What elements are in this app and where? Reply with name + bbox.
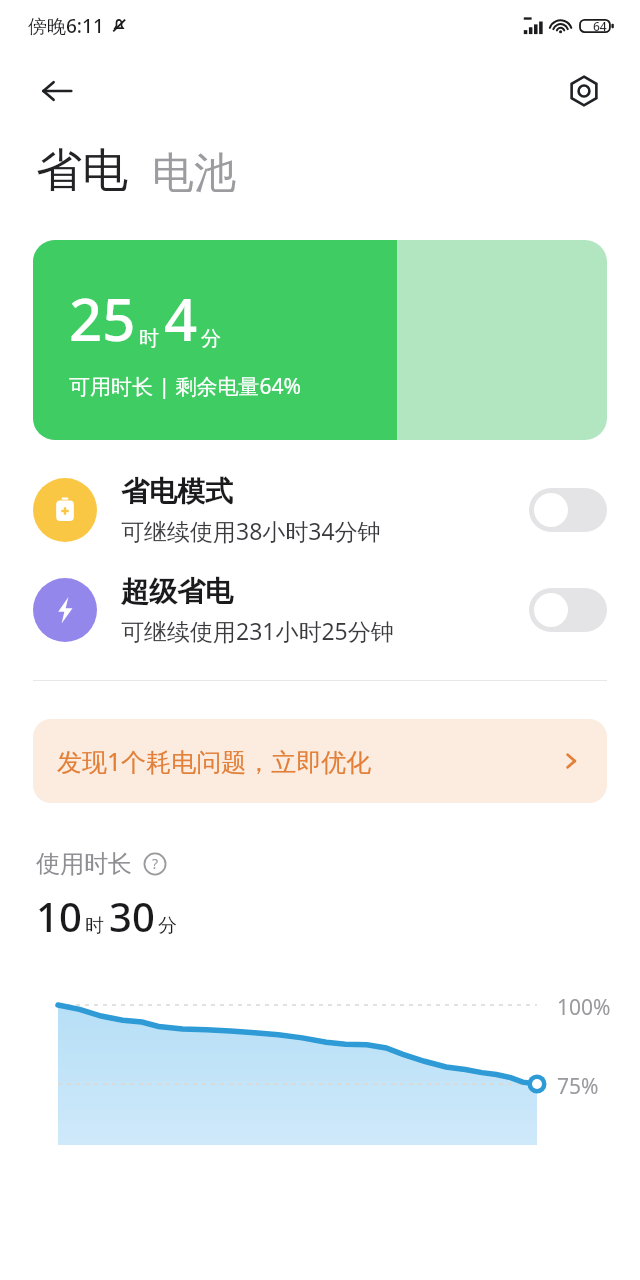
staticText: 4 [164, 279, 198, 358]
staticText: 分 [201, 326, 221, 351]
staticText: 可用时长 | 剩余电量64% [69, 372, 301, 401]
staticText: 可继续使用231小时25分钟 [121, 615, 394, 646]
staticText: 使用时长 [36, 849, 132, 879]
button[interactable]: 超级省电 toggle [529, 588, 607, 632]
staticText: 10 [36, 889, 82, 943]
button[interactable]: 电池 [152, 147, 236, 200]
button[interactable]: 25 [33, 240, 607, 440]
staticText: 64 [593, 18, 607, 34]
staticText: 75% [557, 1072, 599, 1101]
staticText: 傍晚6:11 [28, 13, 104, 39]
button[interactable]: Back [34, 68, 80, 114]
staticText: 25 [69, 279, 136, 358]
button[interactable]: Settings [560, 67, 608, 115]
staticText: 30 [109, 889, 155, 943]
button[interactable]: 省电模式 toggle [529, 488, 607, 532]
staticText: 省电模式 [121, 474, 233, 509]
staticText: 发现1个耗电问题，立即优化 [57, 744, 372, 778]
button[interactable]: 省电模式 [33, 474, 607, 546]
staticText: 省电 [36, 142, 128, 200]
staticText: 时 [139, 326, 159, 351]
button[interactable]: 超级省电 [33, 574, 607, 646]
staticText: 电池 [152, 147, 236, 200]
button[interactable]: 发现1个耗电问题，立即优化 [33, 719, 607, 803]
staticText: ? [152, 854, 159, 873]
staticText: 超级省电 [121, 574, 233, 609]
staticText: 可继续使用38小时34分钟 [121, 515, 381, 546]
staticText: 时 [85, 914, 104, 938]
staticText: 100% [557, 993, 611, 1022]
button[interactable]: 省电 [36, 142, 128, 200]
button[interactable]: Help [142, 851, 168, 877]
staticText: 分 [158, 914, 177, 938]
